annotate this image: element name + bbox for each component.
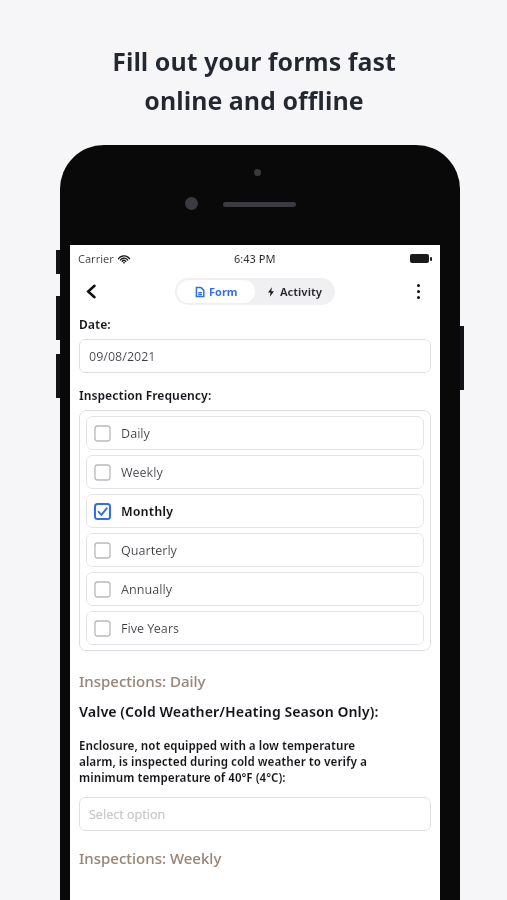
staticText: Weekly xyxy=(121,464,163,481)
staticText: Carrier xyxy=(78,251,114,266)
button[interactable]: Five Years xyxy=(86,611,424,645)
button[interactable]: Back xyxy=(74,274,108,308)
staticText: Five Years xyxy=(121,620,180,637)
staticText: Daily xyxy=(121,425,150,442)
staticText: Form xyxy=(209,284,238,299)
staticText: Monthly xyxy=(121,503,174,520)
button[interactable]: Select option xyxy=(79,797,431,831)
staticText: Activity xyxy=(280,284,322,299)
staticText: Date: xyxy=(79,316,111,332)
button[interactable]: Activity xyxy=(255,280,333,303)
button[interactable]: Daily xyxy=(86,416,424,450)
button[interactable]: More options xyxy=(401,274,435,308)
staticText: online and offline xyxy=(144,83,364,117)
button[interactable]: 09/08/2021 xyxy=(79,339,431,373)
staticText: Fill out your forms fast xyxy=(112,44,396,78)
staticText: 6:43 PM xyxy=(234,251,276,266)
button[interactable]: Monthly xyxy=(86,494,424,528)
button[interactable]: Form xyxy=(177,280,255,303)
staticText: Inspections: Weekly xyxy=(79,848,222,868)
button[interactable]: Annually xyxy=(86,572,424,606)
staticText: Valve (Cold Weather/Heating Season Only)… xyxy=(79,702,379,721)
staticText: Quarterly xyxy=(121,542,177,559)
button[interactable]: Quarterly xyxy=(86,533,424,567)
staticText: Annually xyxy=(121,581,173,598)
staticText: Select option xyxy=(89,806,166,823)
staticText: Inspections: Daily xyxy=(79,671,206,691)
staticText: Enclosure, not equipped with a low tempe… xyxy=(79,738,367,786)
staticText: 09/08/2021 xyxy=(89,348,156,365)
staticText: Inspection Frequency: xyxy=(79,387,212,403)
button[interactable]: Weekly xyxy=(86,455,424,489)
